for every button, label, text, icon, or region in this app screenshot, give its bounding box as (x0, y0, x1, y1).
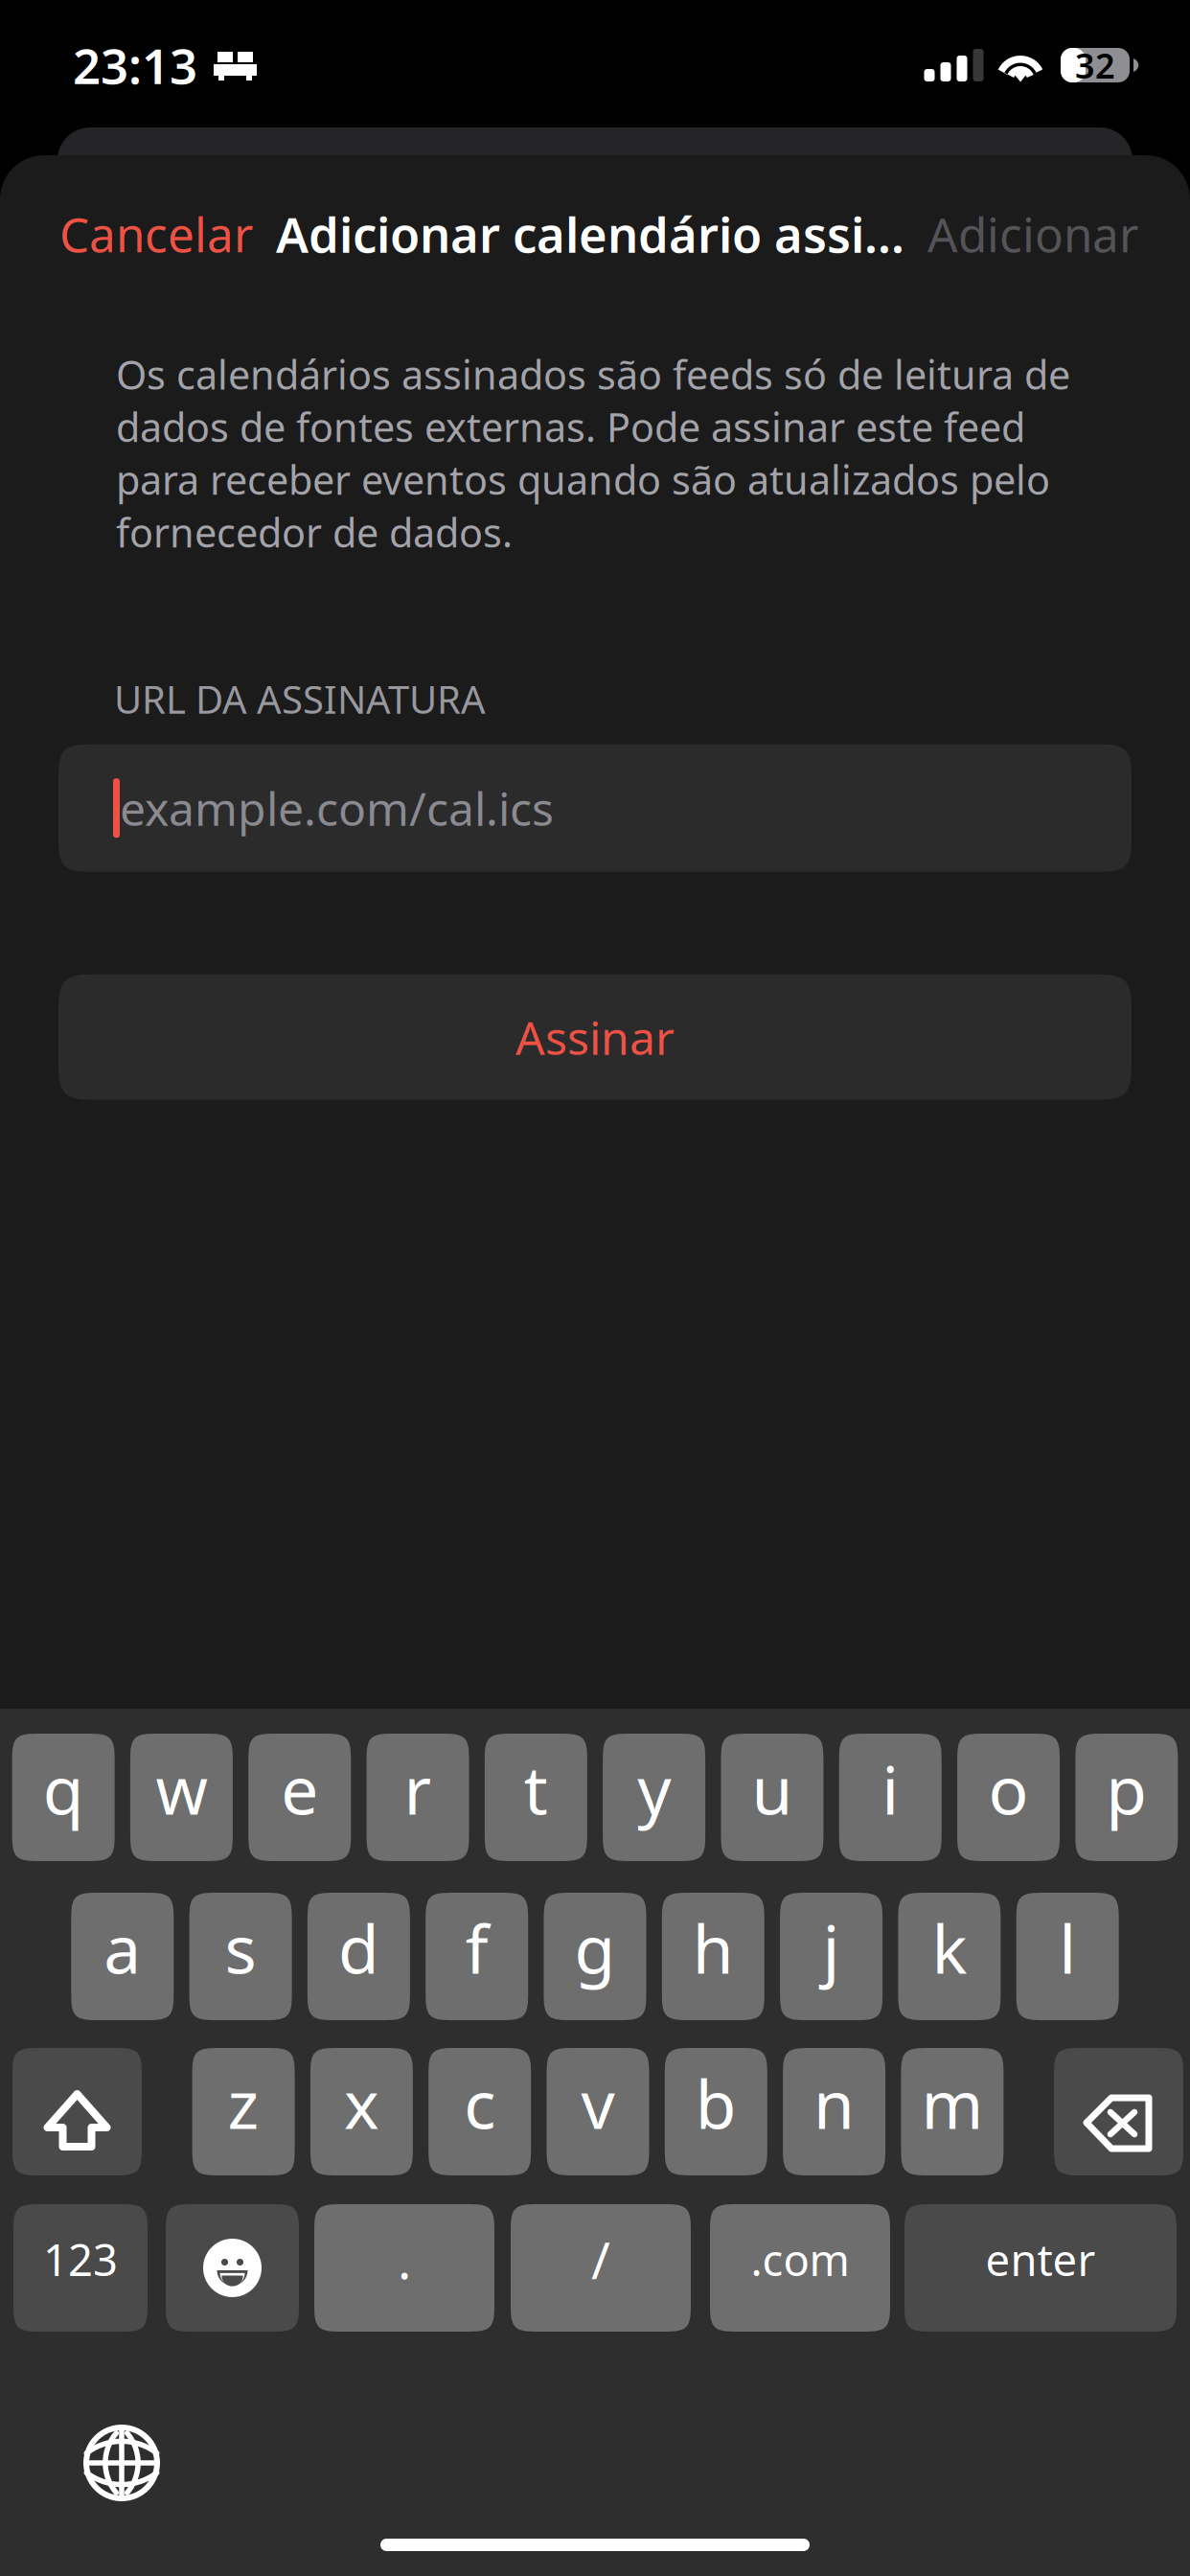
button[interactable]: w (130, 1734, 233, 1861)
button[interactable]: r (366, 1734, 469, 1861)
button[interactable]: q (12, 1734, 115, 1861)
staticText: Cancelar (59, 202, 253, 265)
staticText: r (404, 1745, 432, 1833)
button[interactable]: d (307, 1893, 410, 2020)
button[interactable]: 123 (13, 2204, 148, 2332)
button[interactable]: m (901, 2048, 1004, 2175)
button[interactable]: y (603, 1734, 705, 1861)
staticText: l (1059, 1904, 1076, 1992)
staticText: q (43, 1745, 84, 1833)
staticText: Os calendários assinados são feeds só de… (116, 348, 1070, 558)
staticText: 23:13 (73, 33, 197, 97)
button[interactable]: x (310, 2048, 413, 2175)
staticText: x (344, 2059, 379, 2147)
staticText: a (104, 1904, 141, 1992)
staticText: g (574, 1904, 616, 1992)
staticText: w (156, 1745, 207, 1833)
staticText: h (693, 1904, 734, 1992)
staticText: k (932, 1904, 967, 1992)
staticText: b (695, 2059, 737, 2147)
staticText: z (228, 2059, 259, 2147)
button[interactable]: t (485, 1734, 587, 1861)
staticText: n (814, 2059, 855, 2147)
staticText: c (464, 2059, 496, 2147)
button[interactable]: f (426, 1893, 528, 2020)
staticText: enter (985, 2230, 1096, 2288)
staticText: p (1106, 1745, 1147, 1833)
staticText: .com (751, 2230, 849, 2288)
button[interactable]: e (248, 1734, 351, 1861)
button[interactable]: Assinar (58, 974, 1132, 1100)
button[interactable]: l (1016, 1893, 1119, 2020)
button[interactable]: Emoji (166, 2204, 299, 2332)
button[interactable]: k (898, 1893, 1001, 2020)
button[interactable]: o (957, 1734, 1060, 1861)
button[interactable]: n (783, 2048, 885, 2175)
staticText: example.com/cal.ics (120, 777, 554, 839)
button[interactable]: enter (904, 2204, 1177, 2332)
staticText: t (524, 1745, 548, 1833)
button[interactable]: Next keyboard (81, 2423, 162, 2503)
button[interactable]: g (544, 1893, 646, 2020)
staticText: j (823, 1904, 840, 1992)
button[interactable]: z (192, 2048, 295, 2175)
staticText: e (281, 1745, 318, 1833)
button[interactable]: . (314, 2204, 494, 2332)
staticText: URL DA ASSINATURA (114, 673, 486, 724)
staticText: Adicionar calendário assi… (276, 202, 904, 266)
button[interactable]: i (839, 1734, 942, 1861)
staticText: Adicionar (927, 202, 1138, 265)
staticText: i (882, 1745, 899, 1833)
staticText: m (921, 2059, 983, 2147)
button[interactable]: u (721, 1734, 823, 1861)
staticText: 123 (43, 2230, 118, 2288)
button[interactable]: c (428, 2048, 531, 2175)
button[interactable]: .com (710, 2204, 890, 2332)
staticText: . (398, 2225, 411, 2293)
button[interactable]: b (665, 2048, 767, 2175)
button[interactable]: p (1075, 1734, 1178, 1861)
button[interactable]: Cancelar (59, 202, 253, 265)
staticText: / (591, 2225, 610, 2293)
button[interactable]: Shift (12, 2048, 142, 2175)
staticText: s (225, 1904, 256, 1992)
staticText: y (637, 1745, 671, 1833)
button[interactable]: s (189, 1893, 292, 2020)
button[interactable]: v (547, 2048, 649, 2175)
button[interactable]: Adicionar (927, 202, 1138, 265)
button[interactable]: / (511, 2204, 691, 2332)
staticText: v (581, 2059, 615, 2147)
button[interactable]: j (780, 1893, 883, 2020)
button[interactable]: Delete (1054, 2048, 1183, 2175)
staticText: u (752, 1745, 793, 1833)
button[interactable]: h (662, 1893, 764, 2020)
staticText: d (338, 1904, 379, 1992)
staticText: 32 (1075, 42, 1115, 88)
button[interactable]: a (71, 1893, 174, 2020)
staticText: Assinar (515, 1007, 675, 1068)
staticText: o (988, 1745, 1029, 1833)
staticText: f (465, 1904, 488, 1992)
